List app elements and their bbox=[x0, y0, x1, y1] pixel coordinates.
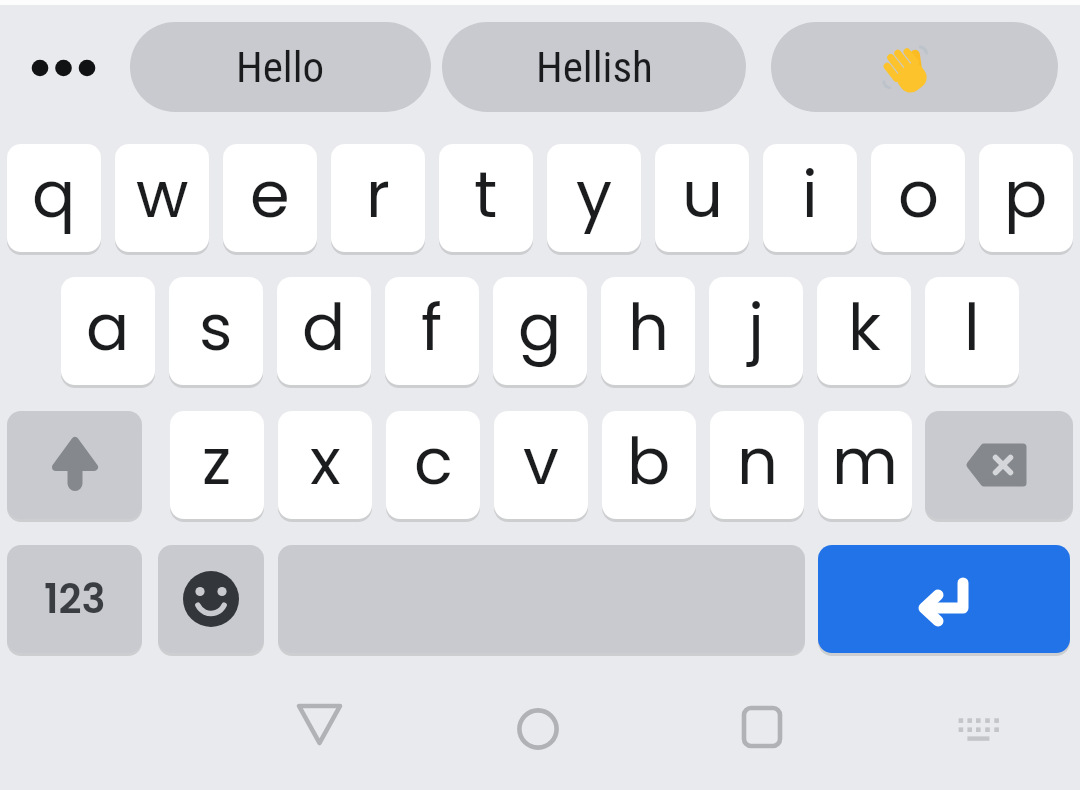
button[interactable]: q bbox=[7, 144, 101, 252]
staticText: p bbox=[1004, 150, 1048, 240]
button[interactable]: k bbox=[817, 277, 911, 385]
staticText: t bbox=[474, 150, 498, 240]
button[interactable]: t bbox=[439, 144, 533, 252]
button[interactable]: r bbox=[331, 144, 425, 252]
staticText: k bbox=[848, 283, 881, 373]
button[interactable]: x bbox=[278, 411, 372, 519]
staticText: q bbox=[32, 150, 76, 240]
staticText: u bbox=[682, 150, 723, 240]
button[interactable]: n bbox=[710, 411, 804, 519]
staticText: v bbox=[523, 417, 559, 507]
button[interactable]: m bbox=[818, 411, 912, 519]
button[interactable]: i bbox=[763, 144, 857, 252]
button[interactable]: l bbox=[925, 277, 1019, 385]
button[interactable] bbox=[950, 702, 1006, 750]
staticText: l bbox=[964, 283, 980, 373]
button[interactable]: e bbox=[223, 144, 317, 252]
button[interactable]: w bbox=[115, 144, 209, 252]
staticText: b bbox=[627, 417, 671, 507]
button[interactable] bbox=[7, 411, 142, 519]
button[interactable]: Hello bbox=[130, 22, 431, 112]
staticText: r bbox=[366, 150, 390, 240]
staticText: w bbox=[136, 150, 189, 240]
button[interactable]: Hellish bbox=[442, 22, 746, 112]
staticText: 123 bbox=[44, 571, 106, 627]
staticText: i bbox=[802, 150, 818, 240]
button[interactable]: o bbox=[871, 144, 965, 252]
staticText: e bbox=[250, 150, 290, 240]
staticText: g bbox=[518, 283, 562, 373]
staticText: o bbox=[898, 150, 939, 240]
button[interactable]: z bbox=[170, 411, 264, 519]
staticText: a bbox=[86, 283, 130, 373]
staticText: j bbox=[748, 283, 764, 373]
button[interactable] bbox=[294, 699, 342, 747]
button[interactable]: b bbox=[602, 411, 696, 519]
staticText: n bbox=[737, 417, 778, 507]
button[interactable]: f bbox=[385, 277, 479, 385]
button[interactable]: c bbox=[386, 411, 480, 519]
staticText: h bbox=[628, 283, 669, 373]
staticText: f bbox=[421, 283, 443, 373]
staticText: x bbox=[310, 417, 341, 507]
button[interactable]: p bbox=[979, 144, 1073, 252]
button[interactable]: u bbox=[655, 144, 749, 252]
button[interactable]: g bbox=[493, 277, 587, 385]
button[interactable]: y bbox=[547, 144, 641, 252]
staticText: z bbox=[202, 417, 232, 507]
button[interactable] bbox=[925, 411, 1073, 519]
staticText: d bbox=[302, 283, 346, 373]
staticText: Hellish bbox=[536, 42, 653, 92]
staticText: y bbox=[576, 150, 613, 240]
button[interactable]: s bbox=[169, 277, 263, 385]
button[interactable] bbox=[771, 22, 1058, 112]
staticText: s bbox=[199, 283, 233, 373]
button[interactable]: 123 bbox=[7, 545, 142, 653]
button[interactable] bbox=[22, 50, 102, 86]
button[interactable] bbox=[818, 545, 1070, 653]
button[interactable]: j bbox=[709, 277, 803, 385]
staticText: Hello bbox=[236, 42, 325, 92]
button[interactable]: v bbox=[494, 411, 588, 519]
button[interactable]: h bbox=[601, 277, 695, 385]
button[interactable] bbox=[158, 545, 264, 653]
staticText: m bbox=[832, 417, 898, 507]
button[interactable]: a bbox=[61, 277, 155, 385]
button[interactable] bbox=[738, 703, 786, 751]
staticText: c bbox=[414, 417, 453, 507]
button[interactable] bbox=[514, 705, 562, 753]
button[interactable]: d bbox=[277, 277, 371, 385]
